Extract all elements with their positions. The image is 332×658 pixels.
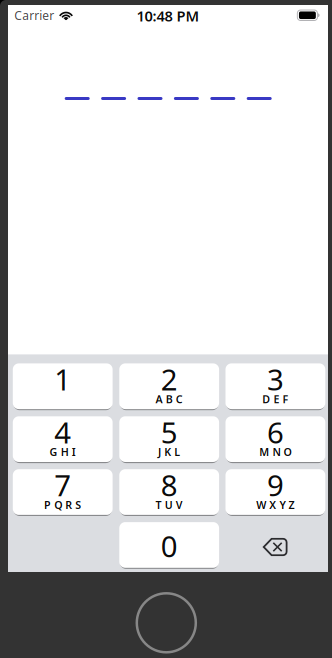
button[interactable]: 9 [225, 469, 325, 515]
staticText: S [75, 498, 81, 512]
staticText: 5 [161, 412, 178, 451]
staticText: C [176, 392, 183, 406]
staticText: 0 [161, 526, 178, 565]
button[interactable]: 2 [119, 363, 219, 409]
staticText: G [50, 445, 58, 459]
button[interactable]: Home [137, 593, 196, 652]
staticText: P [44, 498, 51, 512]
staticText: 4 [54, 412, 71, 451]
staticText: R [65, 498, 72, 512]
staticText: U [165, 498, 173, 512]
staticText: 8 [161, 465, 178, 504]
staticText: L [174, 445, 180, 459]
staticText: 10:48 PM [136, 6, 199, 26]
staticText: 2 [161, 360, 178, 399]
staticText: 3 [267, 360, 284, 399]
button[interactable]: 5 [119, 416, 219, 462]
staticText: D [262, 392, 270, 406]
staticText: N [272, 445, 280, 459]
staticText: M [259, 445, 269, 459]
button[interactable]: 6 [225, 416, 325, 462]
staticText: W [256, 498, 266, 512]
staticText: I [72, 445, 76, 459]
staticText: A [156, 392, 163, 406]
staticText: V [176, 498, 183, 512]
staticText: Q [54, 498, 62, 512]
staticText: 6 [267, 412, 284, 451]
staticText: Y [279, 498, 285, 512]
staticText: Z [289, 498, 295, 512]
staticText: K [164, 445, 171, 459]
button[interactable]: 7 [13, 469, 113, 515]
staticText: T [156, 498, 162, 512]
button[interactable]: 1 [13, 363, 113, 409]
staticText: 1 [54, 360, 71, 399]
staticText: B [166, 392, 173, 406]
staticText: J [158, 445, 161, 459]
staticText: E [273, 392, 279, 406]
button[interactable]: 4 [13, 416, 113, 462]
button[interactable]: 8 [119, 469, 219, 515]
button[interactable]: 0 [119, 522, 219, 568]
staticText: Carrier [14, 7, 54, 23]
staticText: X [269, 498, 276, 512]
staticText: O [283, 445, 291, 459]
staticText: F [282, 392, 288, 406]
staticText: 7 [54, 465, 71, 504]
staticText: H [61, 445, 69, 459]
staticText: 9 [267, 465, 284, 504]
button[interactable]: 3 [225, 363, 325, 409]
button[interactable]: Delete [225, 524, 325, 570]
